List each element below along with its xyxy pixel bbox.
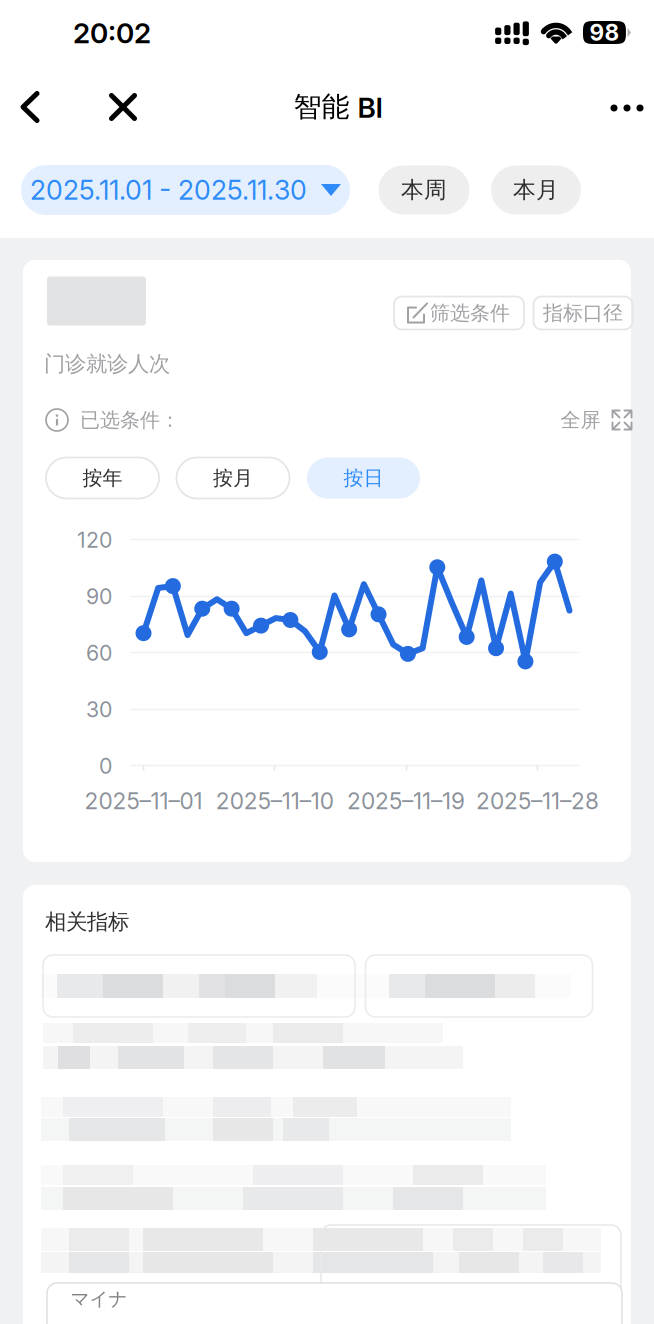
staticText: 按年 — [82, 465, 122, 491]
staticText: 本月 — [513, 176, 559, 204]
staticText: 2025–11–01 — [84, 787, 202, 815]
button[interactable]: 按日 — [307, 457, 420, 498]
staticText: 2025–11–28 — [476, 787, 599, 815]
staticText: 2025.11.01 - 2025.11.30 — [30, 174, 307, 206]
staticText: 指标口径 — [543, 300, 623, 326]
staticText: マイナ — [70, 1287, 127, 1311]
staticText: 0 — [99, 753, 112, 779]
staticText: 相关指标 — [45, 909, 129, 935]
staticText: 全屏 — [560, 407, 600, 433]
button[interactable]: Back — [0, 71, 60, 143]
staticText: 2025–11–10 — [216, 787, 334, 815]
staticText: 20:02 — [73, 16, 151, 50]
staticText: 2025–11–19 — [347, 787, 465, 815]
button[interactable]: 本月 — [491, 165, 581, 214]
staticText: 按月 — [213, 465, 253, 491]
button[interactable]: 指标口径 — [533, 296, 632, 329]
staticText: 90 — [86, 584, 112, 609]
button[interactable]: More options — [597, 72, 654, 144]
staticText: 已选条件： — [80, 407, 180, 433]
staticText: 门诊就诊人次 — [44, 351, 170, 377]
staticText: 本周 — [401, 176, 447, 204]
staticText: 智能 BI — [293, 89, 382, 125]
button[interactable]: 2025.11.01 - 2025.11.30 — [21, 165, 350, 215]
staticText: 120 — [77, 527, 112, 553]
button[interactable]: 全屏 — [546, 400, 646, 440]
button[interactable]: 按月 — [176, 457, 289, 498]
button[interactable]: 筛选条件 — [394, 296, 524, 329]
staticText: 按日 — [343, 465, 383, 491]
staticText: 98 — [589, 19, 619, 46]
button[interactable]: 按年 — [46, 457, 159, 498]
staticText: 30 — [86, 697, 112, 722]
button[interactable]: 本周 — [378, 165, 469, 214]
button[interactable]: Close — [93, 71, 153, 143]
staticText: 60 — [86, 640, 112, 666]
staticText: 筛选条件 — [430, 300, 510, 326]
